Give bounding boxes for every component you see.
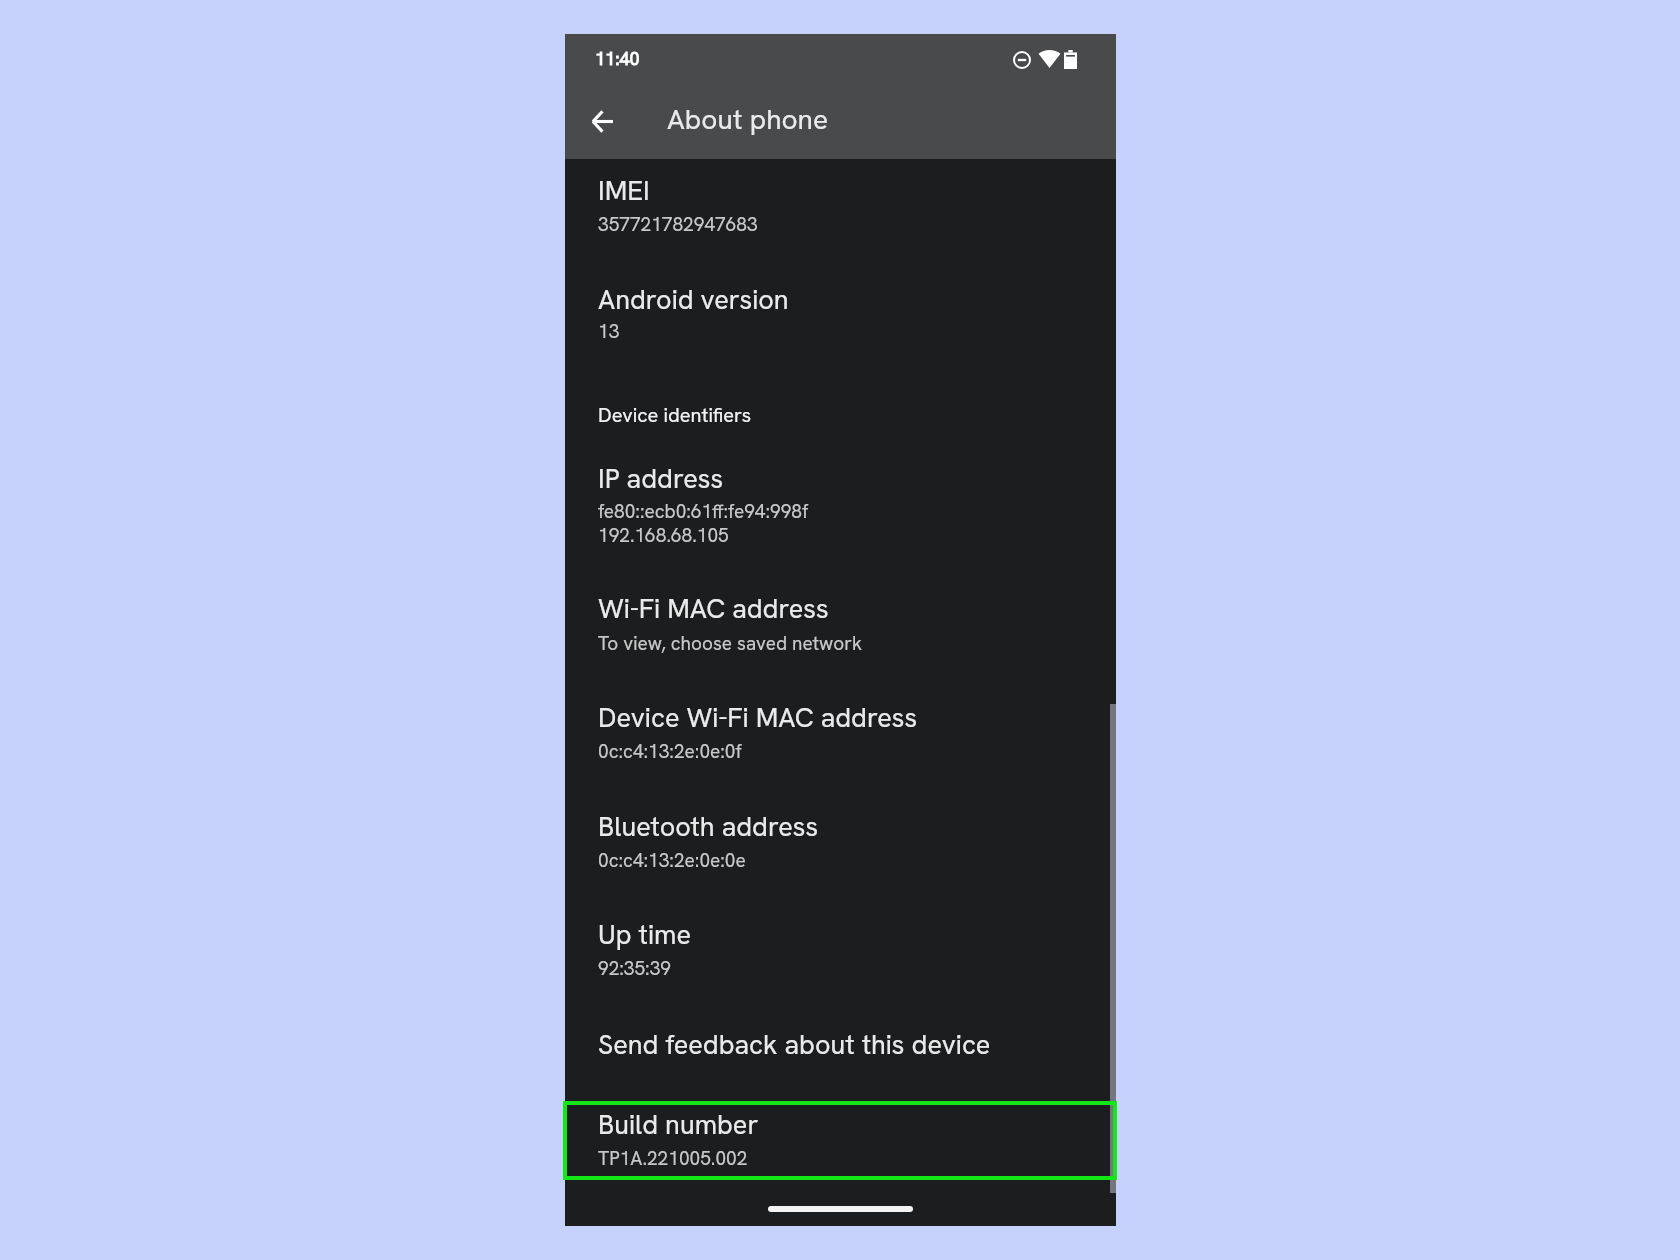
button[interactable]: [565, 907, 1116, 997]
staticText: TP1A.221005.002: [598, 1146, 748, 1171]
staticText: Device identifiers: [598, 402, 752, 428]
staticText: 0c:c4:13:2e:0e:0f: [598, 739, 742, 764]
staticText: Build number: [598, 1107, 759, 1142]
staticText: Send feedback about this device: [598, 1027, 991, 1062]
other: Battery: [1064, 50, 1077, 69]
other: Do not disturb: [1013, 51, 1031, 69]
staticText: IMEI: [598, 173, 650, 208]
button[interactable]: [565, 1097, 1116, 1186]
button[interactable]: [565, 690, 1116, 780]
staticText: 357721782947683: [598, 212, 758, 237]
staticText: fe80::ecb0:61ff:fe94:998f: [598, 499, 809, 524]
button[interactable]: [565, 581, 1116, 672]
staticText: About phone: [667, 101, 829, 137]
staticText: Bluetooth address: [598, 809, 819, 844]
staticText: Wi-Fi MAC address: [598, 591, 829, 626]
staticText: To view, choose saved network: [598, 631, 863, 656]
staticText: 11:40: [595, 47, 640, 70]
button[interactable]: [565, 799, 1116, 889]
button[interactable]: About phone: [667, 101, 829, 137]
button[interactable]: [565, 451, 1116, 564]
button[interactable]: Navigate up: [578, 97, 626, 145]
button[interactable]: Device identifiers: [598, 402, 752, 428]
staticText: 0c:c4:13:2e:0e:0e: [598, 848, 746, 873]
staticText: IP address: [598, 461, 724, 496]
button[interactable]: [565, 163, 1116, 253]
button[interactable]: [565, 1017, 1116, 1074]
staticText: Device Wi-Fi MAC address: [598, 700, 918, 735]
staticText: 192.168.68.105: [598, 523, 729, 548]
button[interactable]: [565, 272, 1116, 361]
other: Wi-Fi: [1036, 50, 1063, 68]
staticText: Up time: [598, 917, 691, 952]
staticText: 13: [598, 319, 620, 344]
staticText: Android version: [598, 282, 789, 317]
staticText: 92:35:39: [598, 956, 671, 981]
